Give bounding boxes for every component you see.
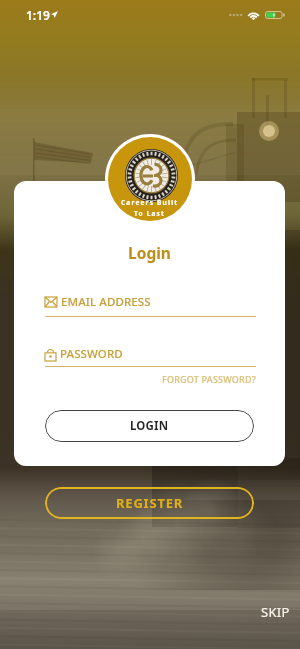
staticText: Login — [14, 242, 285, 263]
staticText: LOGIN — [130, 418, 169, 434]
staticText: EMAIL ADDRESS — [61, 294, 151, 310]
staticText: REGISTER — [116, 494, 184, 512]
button[interactable]: FORGOT PASSWORD? — [162, 373, 256, 385]
staticText: To Last — [134, 209, 166, 218]
button[interactable]: PASSWORD — [45, 345, 256, 362]
staticText: PASSWORD — [60, 346, 123, 362]
staticText: SKIP — [261, 603, 290, 621]
button[interactable]: EMAIL ADDRESS — [45, 294, 256, 310]
staticText: 1:19 — [26, 7, 50, 23]
button[interactable]: LOGIN — [45, 410, 254, 442]
button[interactable]: REGISTER — [45, 487, 254, 519]
staticText: Careers Built — [121, 198, 179, 207]
button[interactable]: SKIP — [261, 603, 290, 621]
